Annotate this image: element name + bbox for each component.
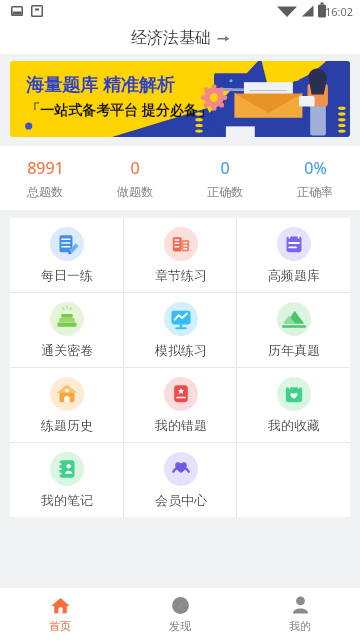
button[interactable]: 0% bbox=[270, 157, 360, 199]
staticText: 高频题库 bbox=[268, 267, 320, 283]
staticText: 正确率 bbox=[297, 184, 333, 199]
button[interactable]: 每日一练 bbox=[10, 218, 124, 292]
staticText: 历年真题 bbox=[268, 342, 320, 358]
button[interactable]: 高频题库 bbox=[237, 218, 350, 292]
staticText: 我的错题 bbox=[155, 417, 207, 433]
staticText: 模拟练习 bbox=[155, 342, 207, 358]
staticText: 经济法基础 bbox=[131, 28, 211, 48]
staticText: 「一站式备考平台 提分必备」 bbox=[26, 100, 212, 119]
staticText: 海量题库 精准解析 bbox=[26, 72, 175, 97]
staticText: 练题历史 bbox=[41, 417, 93, 433]
staticText: 做题数 bbox=[117, 184, 153, 199]
staticText: 我的 bbox=[289, 619, 311, 633]
staticText: 正确数 bbox=[207, 184, 243, 199]
staticText: 0 bbox=[220, 157, 230, 179]
button[interactable]: 我的错题 bbox=[124, 368, 237, 442]
button[interactable]: 经济法基础 bbox=[131, 28, 230, 48]
button[interactable]: 我的收藏 bbox=[237, 368, 350, 442]
staticText: 0 bbox=[130, 157, 140, 179]
button[interactable]: 通关密卷 bbox=[10, 293, 124, 367]
staticText: 会员中心 bbox=[155, 492, 207, 508]
button[interactable]: 会员中心 bbox=[124, 443, 237, 517]
button[interactable]: 模拟练习 bbox=[124, 293, 237, 367]
staticText: 16:02 bbox=[325, 4, 354, 19]
button[interactable]: 首页 bbox=[0, 588, 120, 640]
staticText: 我的笔记 bbox=[41, 492, 93, 508]
button[interactable]: 海量题库 精准解析 bbox=[10, 61, 350, 137]
button[interactable]: 章节练习 bbox=[124, 218, 237, 292]
button[interactable]: 练题历史 bbox=[10, 368, 124, 442]
button[interactable]: 我的笔记 bbox=[10, 443, 124, 517]
staticText: 0% bbox=[304, 157, 327, 179]
staticText: 8991 bbox=[27, 157, 64, 179]
staticText: 总题数 bbox=[27, 184, 63, 199]
staticText: 通关密卷 bbox=[41, 342, 93, 358]
staticText: 发现 bbox=[169, 619, 191, 633]
button[interactable]: 0 bbox=[180, 157, 270, 199]
button[interactable]: 0 bbox=[90, 157, 180, 199]
button[interactable]: 我的 bbox=[240, 588, 360, 640]
button[interactable]: 8991 bbox=[0, 157, 90, 199]
staticText: 章节练习 bbox=[155, 267, 207, 283]
staticText: 首页 bbox=[49, 619, 71, 633]
button[interactable]: 发现 bbox=[120, 588, 240, 640]
button[interactable]: 历年真题 bbox=[237, 293, 350, 367]
staticText: 每日一练 bbox=[41, 267, 93, 283]
staticText: 我的收藏 bbox=[268, 417, 320, 433]
